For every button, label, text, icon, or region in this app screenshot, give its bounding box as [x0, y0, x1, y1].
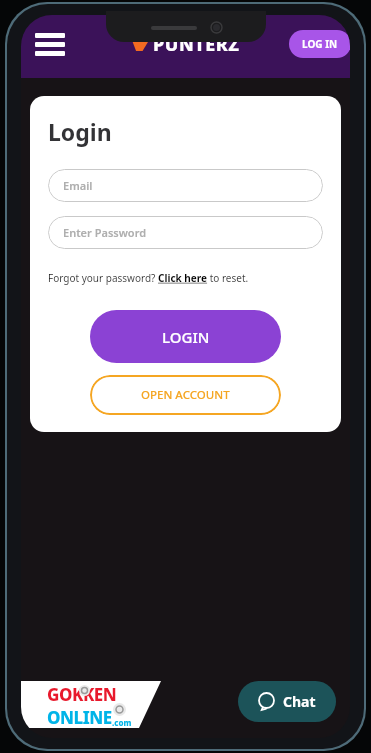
button[interactable]: LOG IN	[289, 30, 350, 58]
staticText: ONLINE	[47, 706, 112, 729]
staticText: OPEN ACCOUNT	[141, 387, 230, 403]
button[interactable]: LOGIN	[90, 310, 281, 363]
button[interactable]: Menu	[29, 26, 71, 63]
staticText: Login	[48, 116, 112, 147]
staticText: .com	[112, 717, 132, 728]
button[interactable]: Enter Password	[48, 216, 323, 249]
button[interactable]: OPEN ACCOUNT	[90, 375, 281, 415]
button[interactable]: Gokken Online	[21, 681, 161, 728]
staticText: Email	[63, 178, 93, 193]
staticText: Enter Password	[63, 225, 147, 240]
staticText: Chat	[283, 692, 316, 711]
staticText: GOKKEN	[47, 683, 117, 706]
button[interactable]: Email	[48, 169, 323, 202]
staticText: PUNTERZ	[153, 32, 240, 57]
staticText: Forgot your password? Click here to rese…	[48, 271, 249, 285]
staticText: LOG IN	[302, 37, 338, 51]
staticText: LOGIN	[162, 327, 210, 347]
button[interactable]: Chat	[238, 681, 336, 722]
